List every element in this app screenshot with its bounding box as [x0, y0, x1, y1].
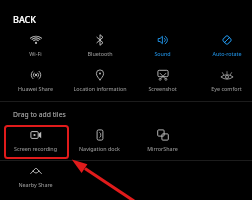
button[interactable]: Bluetooth [68, 32, 131, 64]
button[interactable]: Auto-rotate [195, 32, 252, 64]
button[interactable]: MirrorShare [131, 127, 194, 159]
button[interactable]: Navigation dock [68, 127, 131, 159]
button[interactable]: Location information [68, 67, 131, 99]
button[interactable]: Eye comfort [195, 67, 252, 99]
button[interactable]: Wi-Fi [4, 32, 67, 64]
staticText: BACK [13, 13, 37, 25]
staticText: Screenshot [148, 85, 177, 92]
button[interactable]: Nearby Share [4, 163, 67, 195]
staticText: Navigation dock [79, 145, 120, 152]
staticText: Auto-rotate [212, 50, 242, 57]
button[interactable]: Huawei Share [4, 67, 67, 99]
button[interactable]: Screen recording [4, 127, 67, 159]
staticText: Eye comfort [211, 85, 242, 92]
staticText: Nearby Share [18, 181, 53, 188]
button[interactable]: Sound [131, 32, 194, 64]
staticText: Location information [73, 85, 127, 92]
staticText: MirrorShare [147, 145, 178, 152]
staticText: Screen recording [14, 145, 57, 152]
staticText: Huawei Share [18, 85, 53, 92]
staticText: Sound [154, 50, 171, 57]
button[interactable]: Screenshot [131, 67, 194, 99]
staticText: Drag to add tiles [13, 110, 66, 119]
staticText: Bluetooth [87, 50, 113, 57]
button[interactable]: BACK [13, 13, 37, 25]
staticText: Wi-Fi [29, 50, 42, 57]
